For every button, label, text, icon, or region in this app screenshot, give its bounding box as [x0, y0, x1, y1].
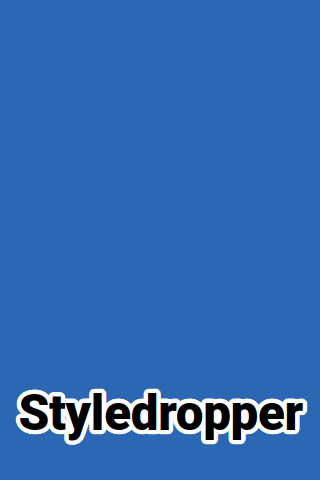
- staticText: Styledropper: [19, 386, 304, 444]
- staticText: Styledropper: [16, 380, 301, 438]
- staticText: Styledropper: [14, 383, 299, 441]
- staticText: Styledropper: [21, 385, 306, 443]
- staticText: Styledropper: [18, 386, 303, 444]
- staticText: Styledropper: [15, 387, 300, 445]
- staticText: Styledropper: [18, 387, 303, 444]
- staticText: Styledropper: [21, 388, 306, 446]
- staticText: Styledropper: [22, 387, 307, 445]
- staticText: Styledropper: [20, 388, 305, 446]
- staticText: Styledropper: [18, 384, 303, 442]
- staticText: Styledropper: [18, 382, 303, 440]
- staticText: Styledropper: [16, 383, 301, 441]
- staticText: Styledropper: [20, 380, 305, 438]
- staticText: Styledropper: [16, 385, 301, 443]
- staticText: Styledropper: [18, 380, 303, 438]
- staticText: Styledropper: [23, 385, 308, 443]
- staticText: Styledropper: [19, 382, 304, 440]
- staticText: Styledropper: [20, 386, 305, 444]
- staticText: Styledropper: [18, 388, 303, 446]
- staticText: Styledropper: [22, 386, 307, 444]
- staticText: Styledropper: [16, 388, 301, 446]
- staticText: Styledropper: [17, 388, 302, 446]
- staticText: Styledropper: [21, 384, 306, 442]
- staticText: Styledropper: [17, 382, 302, 440]
- staticText: Styledropper: [23, 384, 308, 442]
- staticText: Styledropper: [17, 380, 302, 438]
- staticText: Styledropper: [22, 382, 307, 440]
- staticText: Styledropper: [21, 380, 306, 438]
- staticText: Styledropper: [14, 385, 299, 443]
- staticText: Styledropper: [22, 381, 307, 439]
- staticText: Styledropper: [14, 384, 299, 442]
- staticText: Styledropper: [20, 382, 305, 440]
- staticText: Styledropper: [16, 384, 301, 442]
- staticText: Styledropper: [15, 382, 300, 440]
- staticText: Styledropper: [15, 386, 300, 444]
- staticText: Styledropper: [21, 383, 306, 441]
- staticText: Styledropper: [17, 386, 302, 444]
- staticText: Styledropper: [18, 382, 303, 440]
- staticText: Styledropper: [15, 381, 300, 439]
- staticText: Styledropper: [23, 383, 308, 441]
